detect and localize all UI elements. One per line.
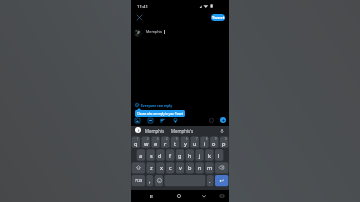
- staticText: t: [174, 140, 177, 148]
- staticText: p: [222, 140, 226, 148]
- button[interactable]: Assistant: [135, 127, 141, 133]
- staticText: 8: [206, 137, 208, 141]
- staticText: 7: [196, 137, 198, 141]
- staticText: o: [212, 140, 216, 148]
- staticText: .: [209, 177, 211, 185]
- button[interactable]: c: [165, 161, 175, 174]
- button[interactable]: Tweet: [211, 14, 225, 21]
- button[interactable]: GIF: [146, 116, 155, 125]
- staticText: g: [178, 152, 182, 160]
- button[interactable]: Poll: [158, 116, 167, 125]
- button[interactable]: Memphis: [145, 128, 165, 134]
- button[interactable]: 6: [180, 136, 190, 149]
- button[interactable]: Location: [171, 116, 180, 125]
- staticText: d: [158, 152, 162, 160]
- staticText: u: [193, 140, 197, 148]
- button[interactable]: .: [206, 174, 214, 187]
- button[interactable]: v: [175, 161, 185, 174]
- button[interactable]: enter: [214, 174, 229, 187]
- button[interactable]: ,: [146, 174, 154, 187]
- button[interactable]: l: [214, 149, 224, 162]
- button[interactable]: del: [214, 161, 229, 174]
- button[interactable]: f: [165, 149, 175, 162]
- staticText: x: [160, 164, 163, 172]
- button[interactable]: 3: [151, 136, 161, 149]
- staticText: a: [139, 152, 143, 160]
- staticText: 3: [157, 137, 159, 141]
- button[interactable]: Memphis's: [171, 128, 194, 134]
- staticText: h: [188, 152, 192, 160]
- button[interactable]: Profile: [134, 29, 142, 37]
- staticText: ,: [149, 177, 151, 185]
- button[interactable]: b: [185, 161, 195, 174]
- staticText: 9: [215, 137, 217, 141]
- staticText: w: [144, 140, 149, 148]
- staticText: n: [198, 164, 202, 172]
- staticText: 6: [186, 137, 188, 141]
- button[interactable]: 4: [160, 136, 170, 149]
- button[interactable]: h: [185, 149, 195, 162]
- staticText: Memphis: [146, 29, 163, 34]
- button[interactable]: shift: [131, 161, 146, 174]
- button[interactable]: 0: [219, 136, 229, 149]
- button[interactable]: Switch keyboard: [219, 193, 224, 198]
- button[interactable]: Recents: [148, 193, 154, 199]
- staticText: b: [188, 164, 192, 172]
- staticText: i: [204, 140, 206, 148]
- button[interactable]: Close: [134, 12, 145, 23]
- button[interactable]: space: [164, 174, 206, 187]
- staticText: q: [134, 140, 138, 148]
- button[interactable]: Everyone can reply: [135, 102, 173, 108]
- button[interactable]: Add another Tweet: [220, 117, 226, 123]
- staticText: r: [164, 140, 167, 148]
- button[interactable]: emoji: [154, 174, 164, 187]
- staticText: y: [184, 140, 187, 148]
- button[interactable]: Home: [175, 192, 182, 199]
- staticText: 2: [147, 137, 149, 141]
- staticText: 4: [166, 137, 168, 141]
- button[interactable]: s: [146, 149, 156, 162]
- staticText: k: [208, 152, 211, 160]
- staticText: Everyone can reply: [141, 103, 173, 107]
- staticText: Tweet: [212, 15, 225, 21]
- button[interactable]: g: [175, 149, 185, 162]
- button[interactable]: Voice input: [219, 128, 225, 134]
- button[interactable]: Choose who can reply to your Tweet: [135, 110, 185, 117]
- staticText: 5: [176, 137, 178, 141]
- button[interactable]: n: [195, 161, 205, 174]
- staticText: f: [169, 152, 171, 160]
- button[interactable]: 7: [190, 136, 200, 149]
- button[interactable]: ?123: [131, 174, 146, 187]
- button[interactable]: 9: [209, 136, 219, 149]
- button[interactable]: m: [205, 161, 215, 174]
- button[interactable]: Photo: [133, 116, 142, 125]
- button[interactable]: Hide keyboard: [201, 193, 207, 199]
- button[interactable]: 1: [131, 136, 141, 149]
- staticText: j: [199, 152, 201, 160]
- button[interactable]: 2: [141, 136, 151, 149]
- button[interactable]: 8: [200, 136, 210, 149]
- staticText: 1: [137, 137, 139, 141]
- button[interactable]: d: [155, 149, 165, 162]
- staticText: Choose who can reply to your Tweet: [137, 112, 183, 116]
- button[interactable]: x: [156, 161, 166, 174]
- button[interactable]: k: [204, 149, 214, 162]
- staticText: m: [207, 164, 213, 172]
- staticText: c: [169, 164, 172, 172]
- staticText: ?123: [135, 178, 143, 183]
- staticText: s: [150, 152, 153, 160]
- button[interactable]: j: [195, 149, 205, 162]
- staticText: 0: [225, 137, 227, 141]
- button[interactable]: 5: [170, 136, 180, 149]
- staticText: l: [218, 152, 220, 160]
- staticText: v: [179, 164, 182, 172]
- staticText: e: [154, 140, 158, 148]
- button[interactable]: a: [136, 149, 146, 162]
- staticText: z: [150, 164, 153, 172]
- button[interactable]: z: [146, 161, 156, 174]
- staticText: 11:41: [137, 3, 148, 9]
